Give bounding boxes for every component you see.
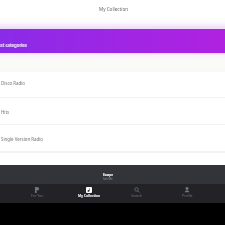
other: Search [134,187,140,193]
staticText: Profile [182,193,193,198]
button[interactable]: Profile [163,184,211,203]
button[interactable]: Podcast categories [0,29,225,54]
button[interactable]: Disco Radio [0,72,225,98]
staticText: Disco Radio [1,80,26,86]
staticText: Search [131,193,143,198]
staticText: For You [31,193,44,198]
other: My Collection [86,187,92,193]
button[interactable]: My Collection [65,184,113,203]
button[interactable]: Escape [0,165,225,184]
button[interactable]: Hits [0,98,225,125]
staticText: My Collection [99,6,129,12]
staticText: Sail Me [103,177,113,181]
staticText: Hits [1,109,10,115]
button[interactable]: Single Version Radio [0,125,225,152]
staticText: Single Version Radio [1,136,43,142]
staticText: Podcast categories [0,42,27,48]
staticText: Escape [103,173,113,177]
other: For You [34,187,40,193]
staticText: My Collection [78,193,101,198]
button[interactable]: Search [113,184,161,203]
button[interactable]: For You [13,184,61,203]
other: Profile [184,187,190,193]
